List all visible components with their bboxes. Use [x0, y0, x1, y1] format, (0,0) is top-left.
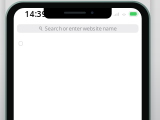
- staticText: 14:39: [25, 9, 47, 19]
- button[interactable]: Search or enter website name: [17, 24, 138, 33]
- staticText: Search or enter website name: [45, 25, 117, 32]
- button[interactable]: Favourite: [19, 42, 22, 45]
- button[interactable]: Time, 14:39: [25, 9, 47, 19]
